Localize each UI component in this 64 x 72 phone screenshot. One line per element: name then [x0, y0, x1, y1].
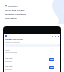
button[interactable]: Trustless [5, 4, 18, 8]
staticText: All gates in one place [5, 41, 20, 43]
button[interactable]: Open [49, 58, 54, 61]
button[interactable]: Main Gate [5, 55, 54, 63]
staticText: Main Gate [5, 65, 13, 67]
staticText: Activity from today [5, 52, 18, 54]
staticText: Trustless [8, 5, 18, 8]
staticText: Building A [5, 60, 13, 62]
button[interactable]: Main Gate [5, 63, 54, 71]
button[interactable]: Open [49, 66, 54, 69]
staticText: Manage your access [5, 38, 24, 40]
staticText: All In One Access Multiple Locations And… [5, 9, 27, 20]
staticText: Building A [5, 68, 13, 70]
staticText: Open [50, 67, 54, 69]
button[interactable]: Search [5, 35, 59, 37]
staticText: Open [50, 59, 54, 61]
staticText: Main Gate [5, 57, 13, 59]
staticText: Recent [5, 49, 10, 51]
